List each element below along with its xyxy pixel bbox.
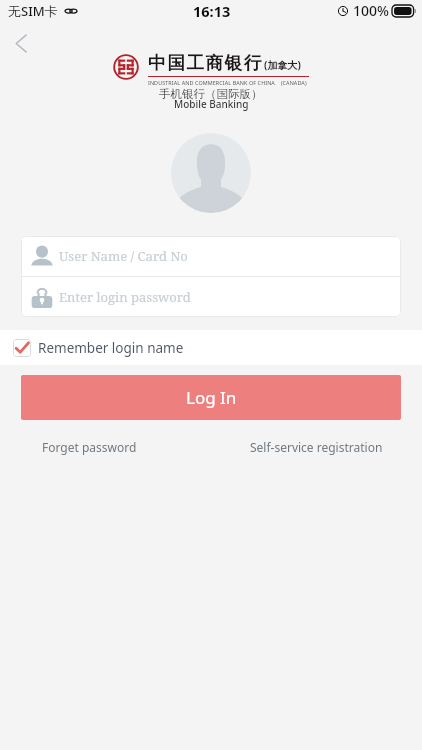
staticText: Forget password xyxy=(42,439,137,455)
staticText: 手机银行（国际版） xyxy=(159,87,263,101)
button[interactable]: Enter login password xyxy=(21,277,401,317)
staticText: Self-service registration xyxy=(250,439,383,455)
staticText: (加拿大) xyxy=(264,58,301,72)
staticText: Remember login name xyxy=(38,339,184,357)
staticText: 无SIM卡 xyxy=(8,2,58,20)
staticText: Enter login password xyxy=(59,288,191,306)
button[interactable]: Self-service registration xyxy=(250,439,383,455)
staticText: User Name / Card No xyxy=(59,247,188,265)
staticText: 中国工商银行 xyxy=(148,52,264,74)
button[interactable]: Log In xyxy=(21,375,401,420)
staticText: INDUSTRIAL AND COMMERCIAL BANK OF CHINA … xyxy=(148,79,307,86)
button[interactable]: User Name / Card No xyxy=(21,236,401,276)
button[interactable]: Forget password xyxy=(42,439,137,455)
staticText: 100% xyxy=(353,1,389,20)
staticText: Mobile Banking xyxy=(174,97,249,111)
button[interactable]: Remember login name xyxy=(0,330,422,365)
staticText: 16:13 xyxy=(193,1,231,21)
button[interactable]: Back xyxy=(3,28,39,59)
staticText: Log In xyxy=(186,386,237,409)
